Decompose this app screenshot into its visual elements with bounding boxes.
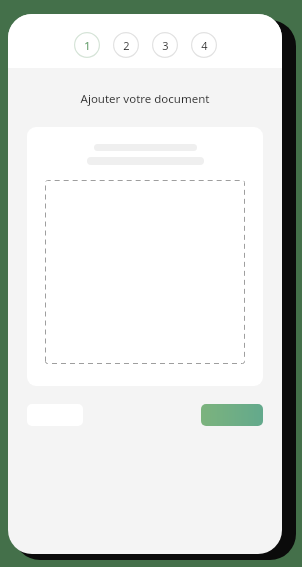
button[interactable]: Déposer un fichier (45, 180, 245, 364)
button[interactable]: Continuer (201, 404, 263, 426)
button[interactable]: 3 (152, 32, 178, 58)
button[interactable]: 4 (191, 32, 217, 58)
staticText: 3 (162, 38, 169, 53)
button[interactable]: 1 (74, 32, 100, 58)
staticText: 4 (201, 38, 208, 53)
staticText: 2 (123, 38, 130, 53)
staticText: 1 (84, 38, 91, 53)
staticText: Ajouter votre document (8, 91, 282, 107)
button[interactable]: 2 (113, 32, 139, 58)
